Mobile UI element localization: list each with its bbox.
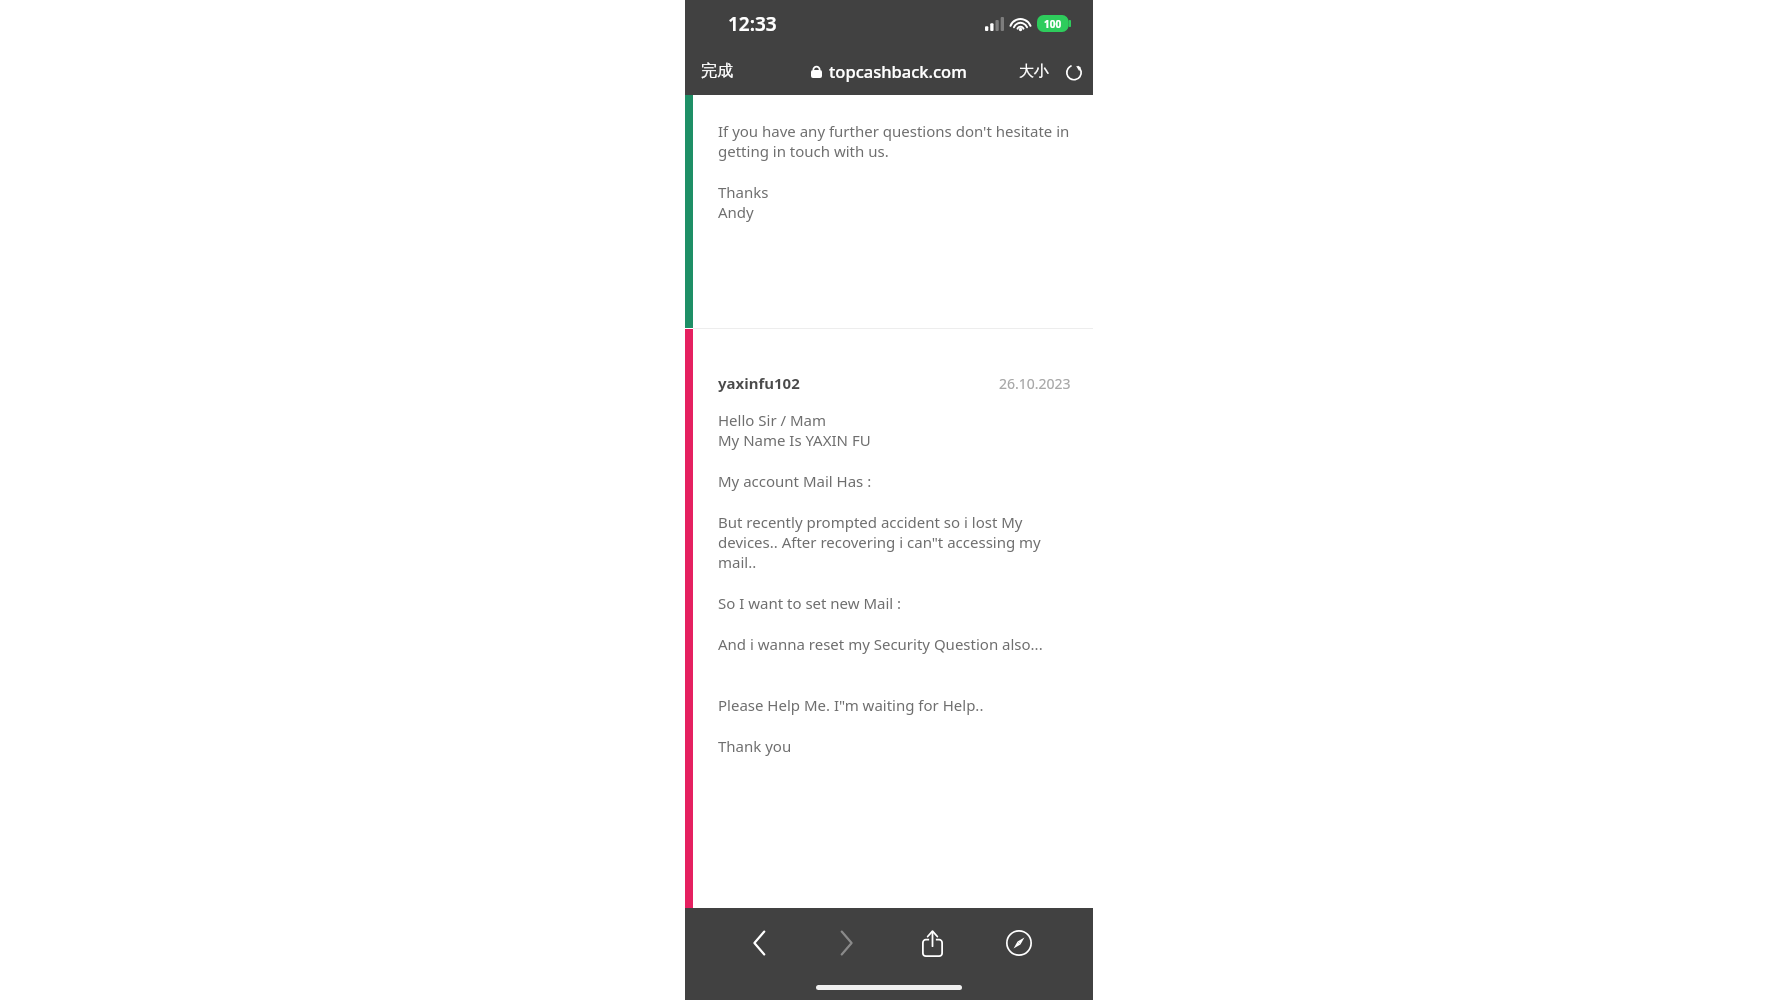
staticText: My account Mail Has : xyxy=(718,471,872,491)
button[interactable]: 完成 xyxy=(685,55,749,87)
button[interactable]: Forward xyxy=(816,920,876,966)
button[interactable]: Reload page xyxy=(1055,57,1093,87)
staticText: My Name Is YAXIN FU xyxy=(718,430,871,450)
staticText: 完成 xyxy=(701,61,733,81)
staticText: 12:33 xyxy=(728,11,777,37)
staticText: mail.. xyxy=(718,552,757,572)
staticText: Please Help Me. I"m waiting for Help.. xyxy=(718,695,984,715)
staticText: topcashback.com xyxy=(829,60,967,82)
staticText: getting in touch with us. xyxy=(718,141,889,161)
staticText: devices.. After recovering i can"t acces… xyxy=(718,532,1041,552)
staticText: So I want to set new Mail : xyxy=(718,593,902,613)
button[interactable]: Share xyxy=(902,920,962,966)
staticText: 大小 xyxy=(1019,62,1049,81)
staticText: And i wanna reset my Security Question a… xyxy=(718,634,1043,654)
staticText: Andy xyxy=(718,202,754,222)
button[interactable]: Back xyxy=(729,920,789,966)
button[interactable]: 大小 xyxy=(1013,56,1055,87)
staticText: Thanks xyxy=(718,182,769,202)
staticText: But recently prompted accident so i lost… xyxy=(718,512,1023,532)
staticText: Thank you xyxy=(718,736,792,756)
button[interactable]: Open in Safari xyxy=(989,920,1049,966)
button[interactable]: yaxinfu102 xyxy=(718,373,800,393)
staticText: 100 xyxy=(1044,17,1062,31)
staticText: Hello Sir / Mam xyxy=(718,410,827,430)
staticText: If you have any further questions don't … xyxy=(718,121,1070,141)
staticText: 26.10.2023 xyxy=(999,374,1071,393)
